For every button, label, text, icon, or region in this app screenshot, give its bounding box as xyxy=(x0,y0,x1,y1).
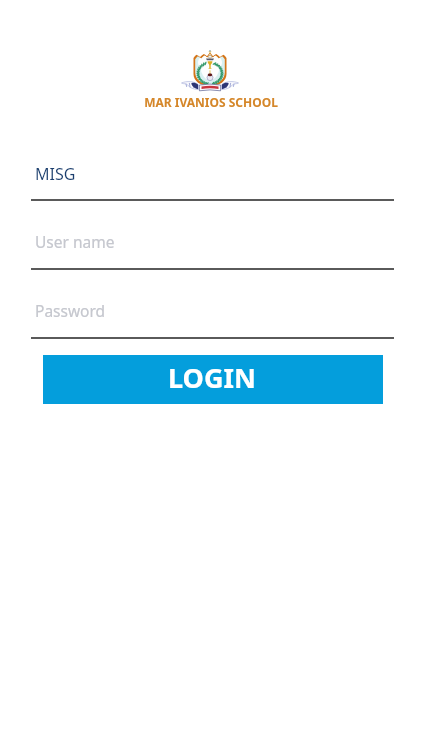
button[interactable]: MISG xyxy=(31,149,394,201)
staticText: LOGIN xyxy=(168,359,256,396)
button[interactable]: User name xyxy=(31,217,394,270)
staticText: Password xyxy=(35,300,106,321)
other: Mar Ivanios School crest xyxy=(173,50,247,92)
staticText: MISG xyxy=(35,163,76,185)
staticText: User name xyxy=(35,231,115,252)
staticText: MAR IVANIOS SCHOOL xyxy=(0,94,422,110)
button[interactable]: Password xyxy=(31,286,394,339)
button[interactable]: LOGIN xyxy=(43,355,383,404)
